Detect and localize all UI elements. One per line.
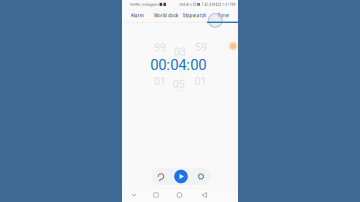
staticText: 03 [174, 45, 186, 58]
staticText: 99 [154, 41, 166, 54]
staticText: 1:31 PM [222, 2, 235, 7]
button[interactable]: Reset timer [151, 168, 171, 185]
button[interactable]: Start timer [171, 168, 191, 185]
button[interactable]: Home [168, 188, 190, 202]
staticText: 00:04:00 [150, 56, 206, 73]
button[interactable]: Timer [209, 8, 237, 24]
staticText: Netflix [130, 2, 141, 7]
staticText: 59 [195, 41, 207, 54]
staticText: Stopwatch [182, 13, 206, 18]
button[interactable]: Stopwatch [180, 8, 208, 24]
button[interactable]: Timer settings [191, 168, 211, 185]
button[interactable]: Recent apps [145, 188, 167, 202]
staticText: World clock [154, 13, 178, 18]
button[interactable]: Hide keyboard [123, 188, 145, 202]
staticText: 01 [154, 74, 166, 88]
staticText: h [158, 88, 160, 92]
button[interactable]: Back [193, 188, 215, 202]
staticText: 7:42 AM [201, 2, 215, 7]
staticText: 05 [172, 77, 184, 90]
staticText: Timer [217, 13, 229, 18]
staticText: Instagram [142, 2, 158, 7]
button[interactable]: World clock [152, 8, 180, 24]
staticText: 01 [194, 74, 206, 88]
staticText: 304 B/s [179, 2, 192, 7]
button[interactable]: Alarm [123, 8, 151, 24]
staticText: Alarm [131, 13, 144, 18]
